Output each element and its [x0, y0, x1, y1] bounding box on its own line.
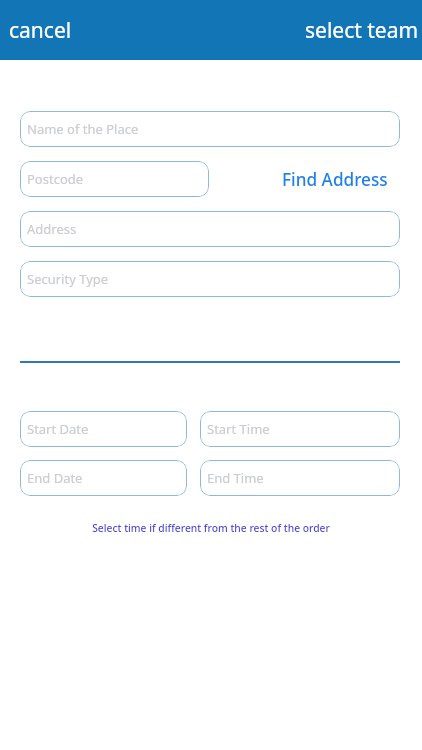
button[interactable]: Name of the Place: [20, 111, 400, 147]
button[interactable]: Postcode: [20, 161, 209, 197]
button[interactable]: Start Time: [200, 411, 400, 447]
button[interactable]: select team: [291, 8, 422, 53]
staticText: Find Address: [282, 168, 388, 191]
button[interactable]: cancel: [0, 8, 86, 53]
staticText: Start Date: [27, 420, 89, 438]
button[interactable]: Security Type: [20, 261, 400, 297]
button[interactable]: End Date: [20, 460, 187, 496]
staticText: End Date: [27, 469, 83, 487]
staticText: Name of the Place: [27, 120, 139, 138]
staticText: End Time: [207, 469, 264, 487]
staticText: cancel: [9, 16, 72, 45]
button[interactable]: End Time: [200, 460, 400, 496]
staticText: select team: [305, 16, 419, 45]
staticText: Address: [27, 220, 77, 238]
staticText: Postcode: [27, 170, 84, 188]
button[interactable]: Address: [20, 211, 400, 247]
staticText: Select time if different from the rest o…: [92, 521, 330, 535]
button[interactable]: Start Date: [20, 411, 187, 447]
button[interactable]: Find Address: [269, 161, 400, 197]
staticText: Start Time: [207, 420, 270, 438]
staticText: Security Type: [27, 270, 109, 288]
